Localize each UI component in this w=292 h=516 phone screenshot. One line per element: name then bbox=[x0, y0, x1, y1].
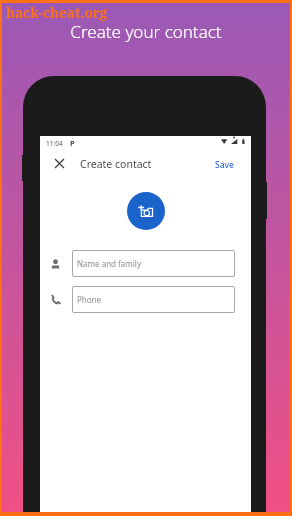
staticText: 11:04 bbox=[46, 139, 63, 148]
staticText: Create your contact bbox=[0, 20, 292, 43]
staticText: Name and family bbox=[77, 258, 141, 269]
button[interactable]: Phone bbox=[72, 286, 235, 313]
staticText: P bbox=[70, 138, 75, 148]
button[interactable]: Save bbox=[215, 159, 234, 171]
staticText: Phone bbox=[77, 294, 102, 305]
button[interactable]: Close bbox=[48, 152, 70, 174]
staticText: hack-cheat.org bbox=[6, 4, 108, 22]
button[interactable]: Name and family bbox=[72, 250, 235, 277]
staticText: Save bbox=[215, 159, 234, 171]
button[interactable]: Add photo bbox=[127, 192, 165, 230]
staticText: Create contact bbox=[80, 157, 152, 171]
